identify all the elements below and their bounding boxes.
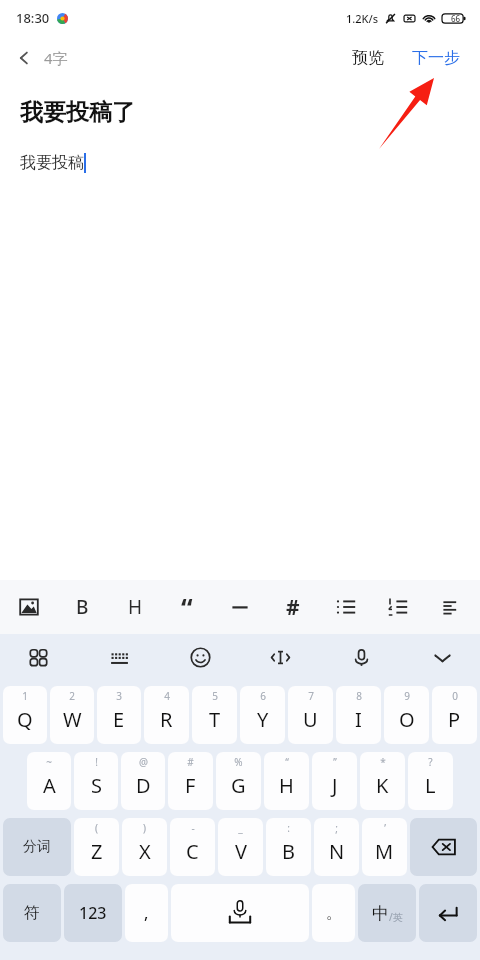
button[interactable]: B [63, 588, 101, 626]
button[interactable]: # [168, 752, 213, 810]
button[interactable]: 3 [97, 686, 141, 744]
staticText: 9 [404, 689, 410, 703]
button[interactable]: % [216, 752, 261, 810]
staticText: V [235, 838, 247, 865]
staticText: W [63, 706, 82, 733]
button[interactable]: 预览 [342, 42, 394, 74]
staticText: Y [257, 706, 269, 733]
staticText: 6 [260, 689, 266, 703]
staticText: D [136, 772, 151, 799]
staticText: ! [95, 755, 98, 769]
staticText: K [376, 772, 389, 799]
button[interactable]: ; [314, 818, 359, 876]
button[interactable]: 中 [358, 884, 416, 942]
button[interactable]: “ [264, 752, 309, 810]
staticText: _ [238, 821, 243, 835]
button[interactable]: Hide keyboard [422, 637, 462, 677]
staticText: # [286, 593, 300, 622]
button[interactable]: 下一步 [404, 42, 468, 74]
staticText: @ [139, 755, 148, 769]
staticText: L [425, 772, 436, 799]
staticText: /英 [389, 910, 403, 924]
staticText: ” [333, 755, 337, 769]
button[interactable]: Voice input [341, 637, 381, 677]
button[interactable]: ? [408, 752, 453, 810]
button[interactable]: Divider [221, 588, 259, 626]
staticText: 2 [69, 689, 75, 703]
button[interactable]: 6 [240, 686, 285, 744]
staticText: G [231, 772, 246, 799]
button[interactable]: 。 [312, 884, 355, 942]
staticText: 7 [308, 689, 314, 703]
button[interactable]: Enter [419, 884, 477, 942]
button[interactable]: 123 [64, 884, 122, 942]
staticText: X [139, 838, 151, 865]
button[interactable]: 符 [3, 884, 61, 942]
button[interactable]: 5 [192, 686, 237, 744]
staticText: Z [91, 838, 103, 865]
staticText: B [282, 838, 295, 865]
staticText: Q [17, 706, 33, 733]
button[interactable]: 8 [336, 686, 381, 744]
staticText: 1 [22, 689, 28, 703]
button[interactable]: ” [312, 752, 357, 810]
button[interactable]: Move cursor [260, 637, 300, 677]
button[interactable]: Insert image [10, 588, 48, 626]
button[interactable]: “ [168, 588, 206, 626]
button[interactable]: 4 [144, 686, 189, 744]
staticText: F [185, 772, 196, 799]
staticText: 1.2K/s [346, 11, 379, 26]
button[interactable]: 7 [288, 686, 333, 744]
staticText: 分词 [23, 838, 51, 856]
staticText: 66 [451, 13, 461, 24]
button[interactable]: Align [432, 588, 470, 626]
button[interactable]: 9 [384, 686, 429, 744]
button[interactable]: : [266, 818, 311, 876]
button[interactable]: * [360, 752, 405, 810]
button[interactable]: Delete [410, 818, 477, 876]
staticText: % [234, 755, 243, 769]
button[interactable]: Emoji [180, 637, 220, 677]
staticText: M [375, 838, 394, 865]
button[interactable]: ~ [27, 752, 71, 810]
button[interactable]: Keyboard modes [18, 637, 58, 677]
button[interactable]: 0 [432, 686, 477, 744]
button[interactable]: 分词 [3, 818, 71, 876]
staticText: # [187, 755, 194, 769]
staticText: 8 [356, 689, 362, 703]
staticText: 123 [79, 902, 107, 924]
staticText: “ [285, 755, 289, 769]
staticText: I [355, 706, 362, 733]
staticText: : [287, 821, 290, 835]
staticText: “ [181, 590, 193, 625]
button[interactable]: Back [0, 42, 80, 74]
button[interactable]: Keyboard layout [99, 637, 139, 677]
button[interactable]: Bullet list [327, 588, 365, 626]
staticText: 3 [116, 689, 122, 703]
button[interactable]: 1 [3, 686, 47, 744]
staticText: ’ [384, 821, 386, 835]
staticText: O [399, 706, 415, 733]
button[interactable]: # [274, 588, 312, 626]
staticText: 符 [24, 903, 40, 923]
staticText: N [329, 838, 345, 865]
button[interactable]: 2 [50, 686, 94, 744]
staticText: 18:30 [16, 9, 50, 27]
staticText: ) [143, 821, 146, 835]
staticText: 。 [326, 903, 342, 923]
button[interactable]: - [170, 818, 215, 876]
button[interactable]: Numbered list [379, 588, 417, 626]
staticText: 4 [164, 689, 170, 703]
button[interactable]: ) [122, 818, 167, 876]
button[interactable]: ’ [362, 818, 407, 876]
button[interactable]: , [125, 884, 168, 942]
button[interactable]: _ [218, 818, 263, 876]
staticText: C [186, 838, 199, 865]
staticText: 我要投稿了 [20, 98, 135, 127]
staticText: P [448, 706, 461, 733]
button[interactable]: Space [171, 884, 309, 942]
button[interactable]: @ [121, 752, 165, 810]
button[interactable]: ! [74, 752, 118, 810]
button[interactable]: ( [74, 818, 119, 876]
button[interactable]: H [116, 588, 154, 626]
